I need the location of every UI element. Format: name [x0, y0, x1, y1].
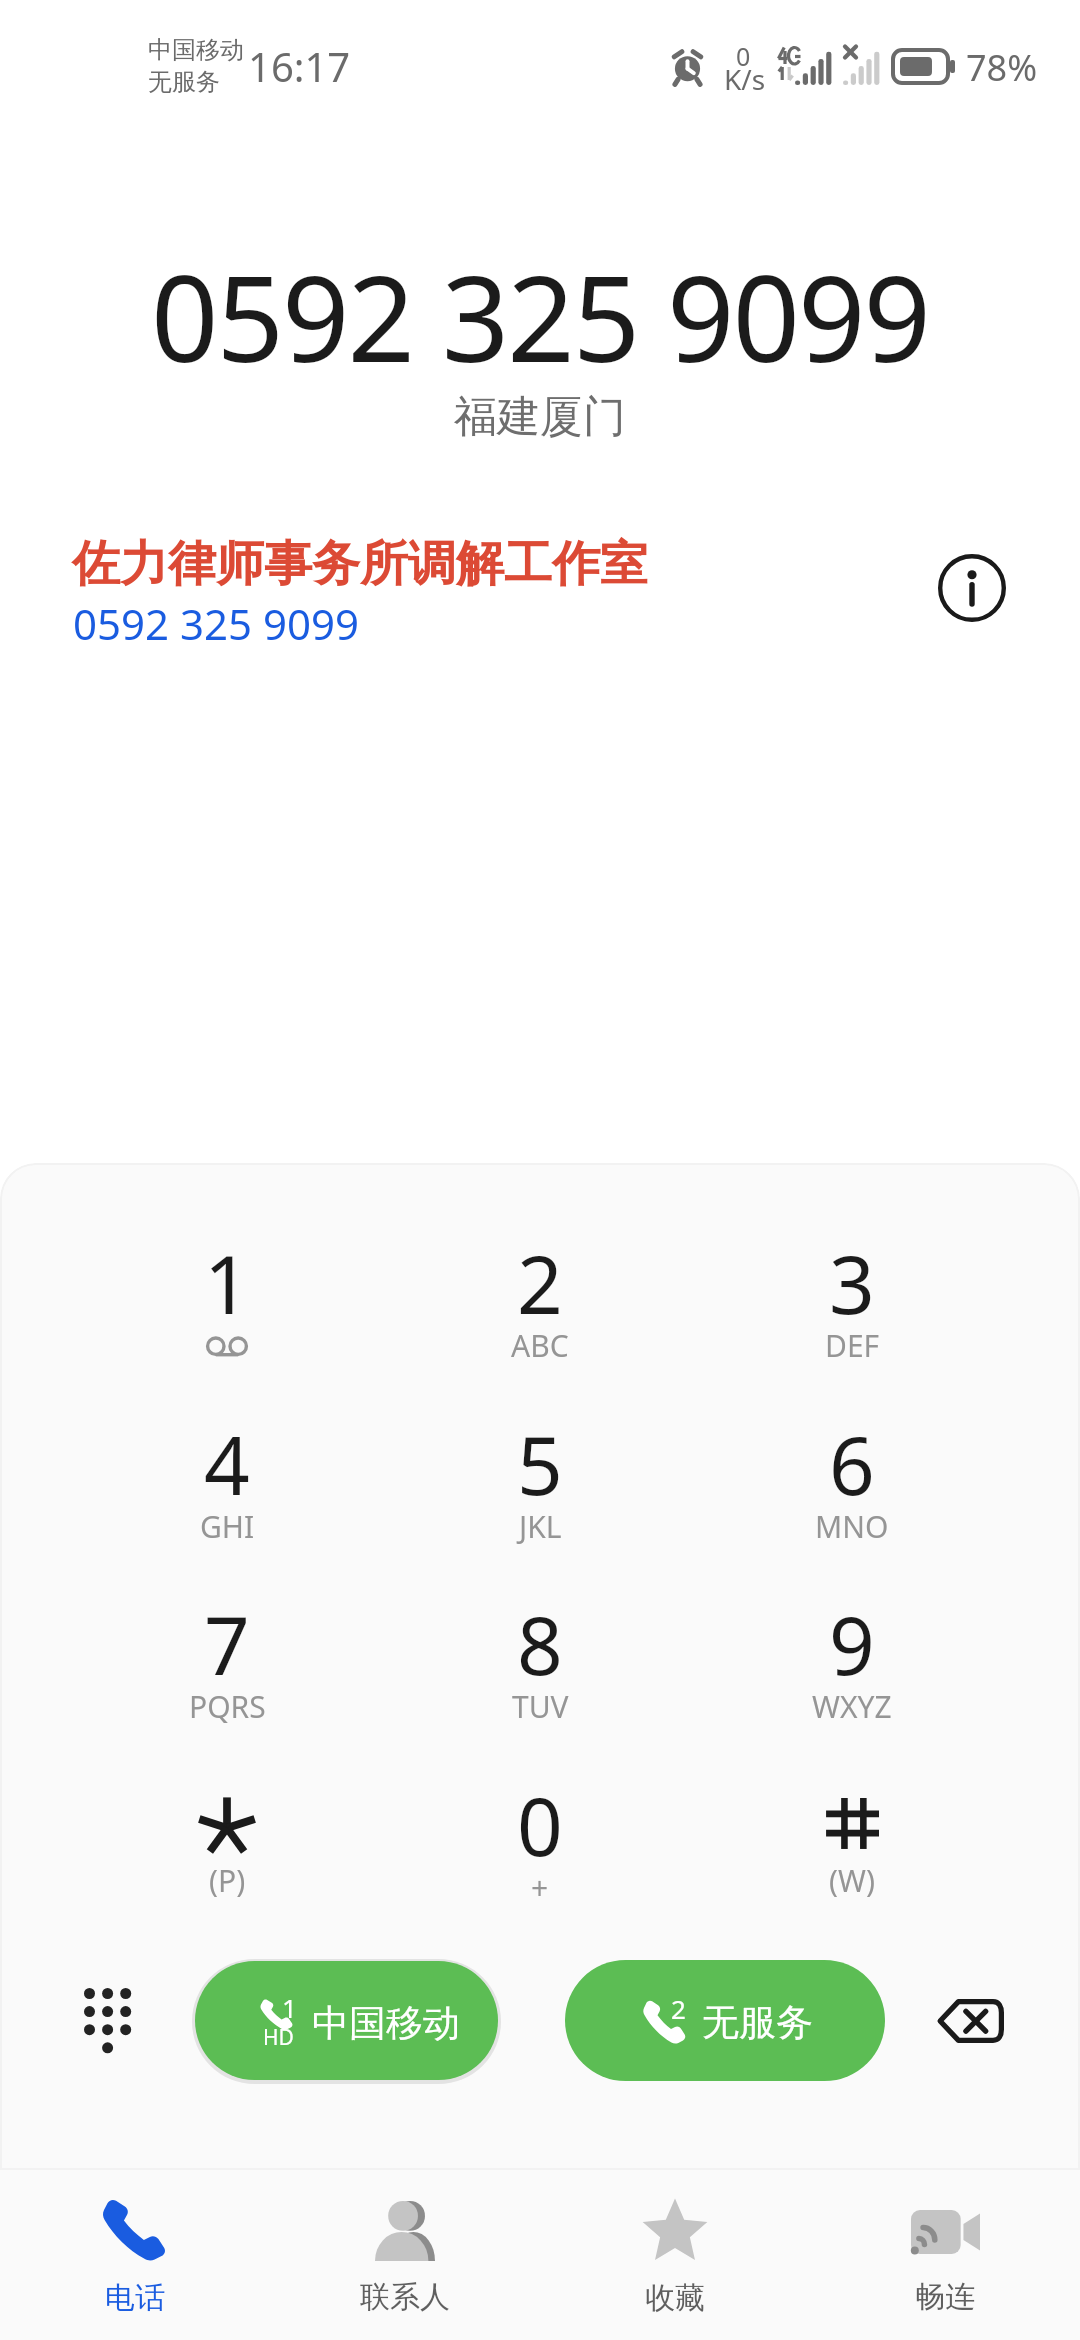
button[interactable]: Info [922, 538, 1022, 638]
staticText: 2 [671, 1991, 686, 2026]
staticText: 3 [829, 1228, 875, 1337]
button[interactable]: Backspace [905, 1961, 1035, 2081]
button[interactable]: 2 [565, 1960, 885, 2081]
staticText: 2 [517, 1228, 563, 1337]
staticText: 0 [736, 39, 751, 73]
staticText: 无服务 [148, 67, 220, 97]
button[interactable]: 9 [702, 1562, 1002, 1737]
staticText: 电话 [105, 2279, 165, 2317]
staticText: 7 [204, 1589, 250, 1698]
staticText: 78% [966, 43, 1038, 92]
staticText: 联系人 [360, 2278, 450, 2316]
staticText: GHI [200, 1506, 255, 1547]
button[interactable]: 6 [702, 1382, 1002, 1557]
staticText: HD [263, 2023, 294, 2052]
staticText: ABC [511, 1325, 569, 1366]
staticText: TUV [512, 1686, 569, 1727]
staticText: 中国移动 [148, 35, 244, 65]
staticText: MNO [815, 1506, 889, 1547]
button[interactable]: 8 [390, 1562, 690, 1737]
staticText: 9 [829, 1589, 875, 1698]
staticText: 16:17 [248, 39, 351, 93]
staticText: 中国移动 [312, 2000, 460, 2047]
staticText: 畅连 [915, 2278, 975, 2316]
staticText: 4 [204, 1409, 250, 1518]
staticText: 1 [204, 1228, 250, 1337]
staticText: 佐力律师事务所调解工作室 [72, 534, 648, 594]
staticText: K/s [724, 60, 766, 98]
button[interactable]: 5 [390, 1382, 690, 1557]
staticText: PQRS [189, 1686, 266, 1727]
staticText: 0 [517, 1770, 563, 1879]
staticText: 6 [829, 1409, 875, 1518]
staticText: 无服务 [702, 1999, 813, 2046]
button[interactable]: 1 [77, 1201, 377, 1376]
button[interactable]: 畅连 [810, 2169, 1080, 2340]
button[interactable]: 收藏 [540, 2169, 810, 2340]
staticText: (P) [209, 1860, 246, 1901]
staticText: (W) [829, 1860, 875, 1901]
button[interactable]: 0 [390, 1743, 690, 1918]
staticText: JKL [519, 1506, 562, 1547]
button[interactable]: 联系人 [270, 2169, 540, 2340]
staticText: 0592 325 9099 [73, 595, 360, 652]
button[interactable]: 1 [195, 1961, 498, 2080]
button[interactable]: 4 [77, 1382, 377, 1557]
staticText: 福建厦门 [0, 390, 1080, 444]
button[interactable]: 电话 [0, 2169, 270, 2340]
button[interactable]: 3 [702, 1201, 1002, 1376]
staticText: 0592 325 9099 [0, 236, 1080, 397]
staticText: 5 [517, 1409, 563, 1518]
button[interactable]: (P) [77, 1743, 377, 1918]
button[interactable]: 7 [77, 1562, 377, 1737]
button[interactable]: Dialpad [40, 1961, 175, 2081]
staticText: 1 [282, 1990, 297, 2025]
button[interactable]: 2 [390, 1201, 690, 1376]
button[interactable]: (W) [702, 1743, 1002, 1918]
staticText: WXYZ [812, 1686, 892, 1727]
staticText: + [531, 1867, 549, 1908]
staticText: 8 [517, 1589, 563, 1698]
staticText: DEF [825, 1325, 880, 1366]
staticText: 收藏 [645, 2279, 705, 2317]
